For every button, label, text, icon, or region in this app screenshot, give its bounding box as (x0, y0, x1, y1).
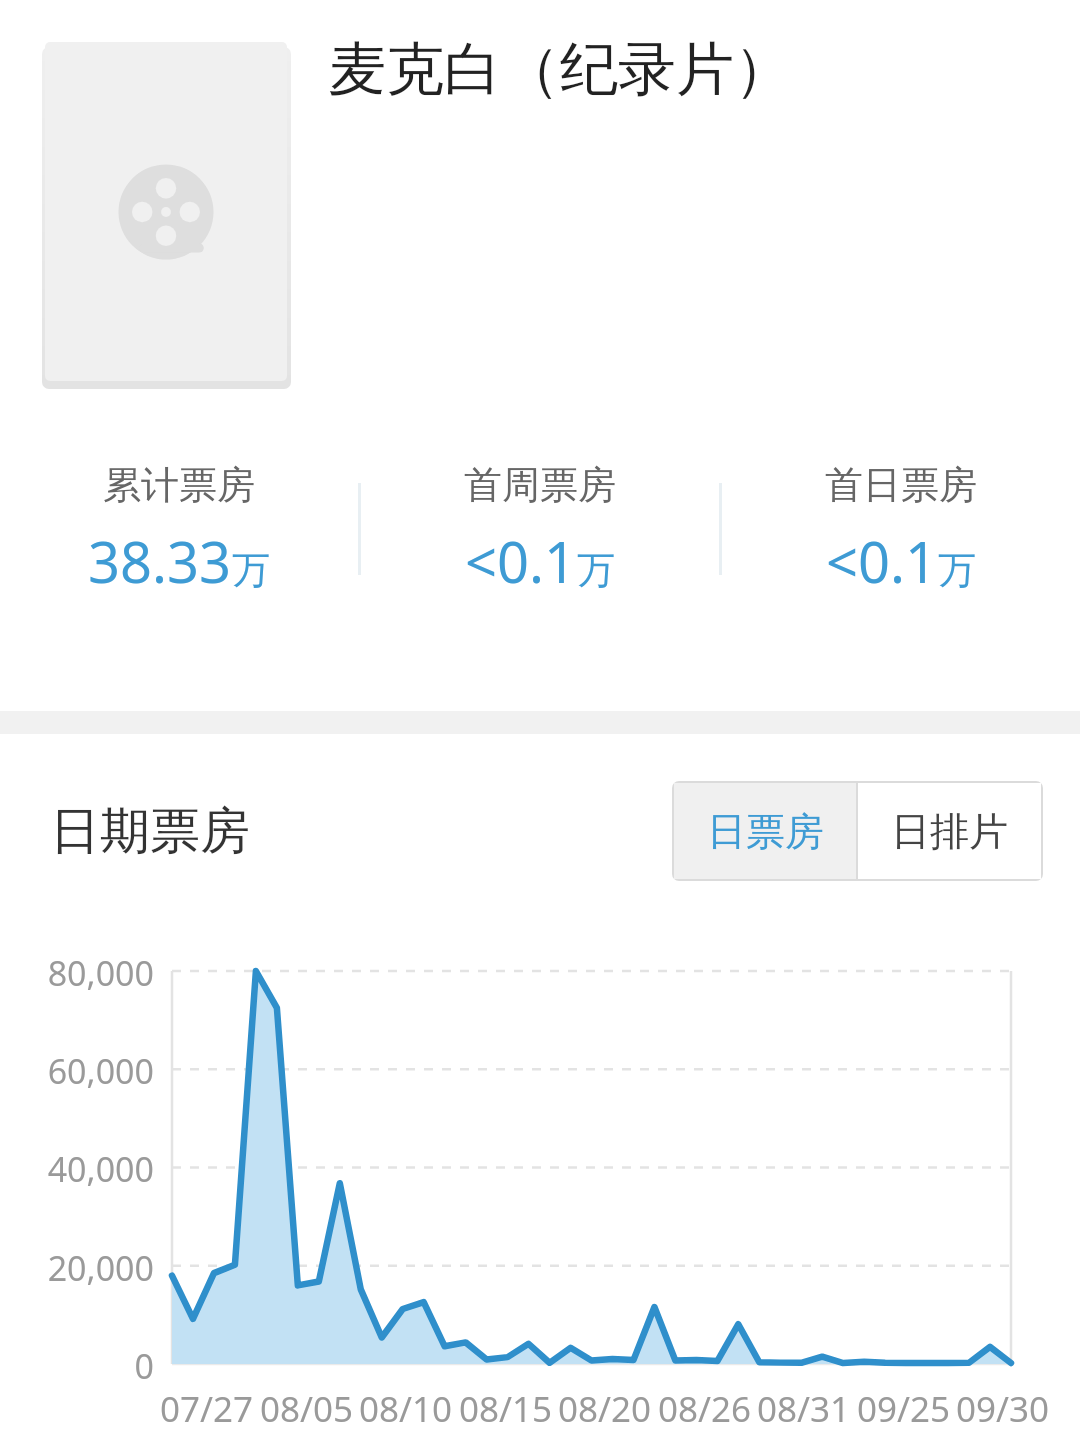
button[interactable]: 首周票房 (361, 455, 719, 615)
staticText: 首周票房 (464, 461, 616, 509)
staticText: 累计票房 (103, 461, 255, 509)
staticText: 万 (232, 546, 270, 594)
staticText: <0.1 (826, 523, 938, 599)
staticText: 40,000 (0, 1146, 154, 1192)
button[interactable]: 日排片 (858, 783, 1041, 879)
staticText: 万 (938, 546, 976, 594)
staticText: 80,000 (0, 950, 154, 996)
staticText: 08/26 (658, 1385, 752, 1433)
staticText: 日期票房 (50, 800, 250, 863)
staticText: 08/10 (359, 1385, 453, 1433)
staticText: 09/25 (857, 1385, 951, 1433)
staticText: 60,000 (0, 1048, 154, 1094)
button[interactable]: Movie poster (45, 42, 287, 381)
button[interactable]: 日票房 (674, 783, 856, 879)
staticText: <0.1 (465, 523, 577, 599)
staticText: 万 (577, 546, 615, 594)
staticText: 08/20 (558, 1385, 652, 1433)
staticText: 麦克白（纪录片） (328, 33, 792, 106)
button[interactable]: 首日票房 (722, 455, 1080, 615)
button[interactable]: 累计票房 (0, 455, 358, 615)
staticText: 20,000 (0, 1245, 154, 1291)
staticText: 首日票房 (825, 461, 977, 509)
staticText: 08/05 (260, 1385, 354, 1433)
staticText: 38.33 (88, 523, 232, 599)
staticText: 09/30 (956, 1385, 1050, 1433)
staticText: 日排片 (891, 807, 1008, 856)
staticText: 日票房 (707, 807, 824, 856)
staticText: 08/31 (757, 1385, 851, 1433)
staticText: 07/27 (160, 1385, 254, 1433)
staticText: 08/15 (459, 1385, 553, 1433)
staticText: 0 (0, 1343, 154, 1389)
